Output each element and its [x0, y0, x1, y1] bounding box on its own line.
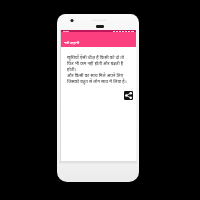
button[interactable]: Share — [124, 91, 133, 100]
button[interactable]: नयी कहानी — [61, 32, 136, 47]
staticText: नयी कहानी — [64, 40, 80, 45]
staticText: खुशियाँ ऐसी चीज़ हैं किसी को दो तो फिर भ… — [67, 54, 127, 84]
